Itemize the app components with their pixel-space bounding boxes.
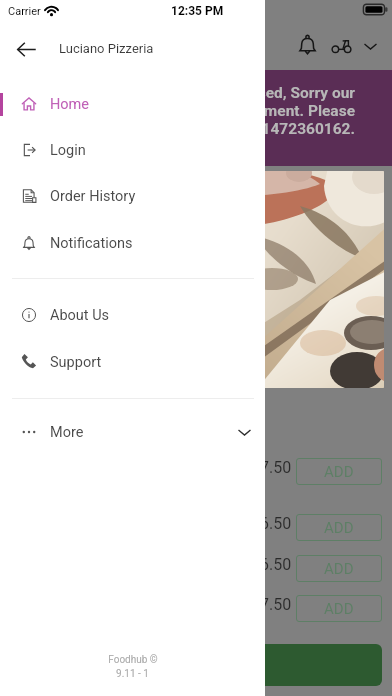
staticText: ADD — [324, 560, 354, 578]
staticText: 9.11 - 1 — [116, 668, 149, 680]
button[interactable]: Back — [10, 33, 42, 65]
button[interactable]: ADD — [296, 514, 382, 541]
staticText: store is closed at the moment. Please — [16, 102, 355, 120]
staticText: Login — [50, 142, 86, 159]
button[interactable]: More — [0, 409, 265, 455]
button[interactable]: ADD — [296, 458, 382, 485]
button[interactable]: Delivery options — [327, 31, 355, 59]
button[interactable]: Notifications — [0, 220, 265, 266]
staticText: ADD — [324, 519, 354, 537]
button[interactable]: Support — [0, 339, 265, 385]
staticText: Order History — [50, 188, 136, 205]
staticText: Foodhub © — [108, 654, 158, 666]
staticText: ADD — [324, 463, 354, 481]
staticText: More — [50, 424, 84, 441]
staticText: 12:35 PM — [171, 4, 224, 18]
button[interactable]: About Us — [0, 292, 265, 338]
button[interactable]: Notifications — [294, 31, 321, 58]
button[interactable]: Expand — [358, 34, 382, 58]
staticText: Carrier — [8, 5, 41, 18]
staticText: About Us — [50, 307, 110, 324]
staticText: Notifications — [50, 235, 133, 252]
staticText: 7.50 — [260, 458, 292, 477]
staticText: 6.50 — [260, 555, 292, 574]
staticText: 7.50 — [260, 595, 292, 614]
button[interactable]: ADD — [296, 595, 382, 622]
staticText: Luciano Pizzeria — [59, 41, 154, 56]
staticText: 6.50 — [260, 514, 292, 533]
staticText: call 01472360162. — [16, 120, 355, 138]
staticText: Home — [50, 96, 90, 113]
staticText: Store is closed, Sorry our — [16, 84, 355, 102]
button[interactable]: ADD — [296, 555, 382, 582]
button[interactable]: Home — [0, 81, 265, 127]
staticText: Support — [50, 354, 102, 371]
button[interactable]: Login — [0, 127, 265, 173]
button[interactable] — [10, 644, 382, 686]
staticText: ADD — [324, 600, 354, 618]
button[interactable]: Order History — [0, 173, 265, 219]
